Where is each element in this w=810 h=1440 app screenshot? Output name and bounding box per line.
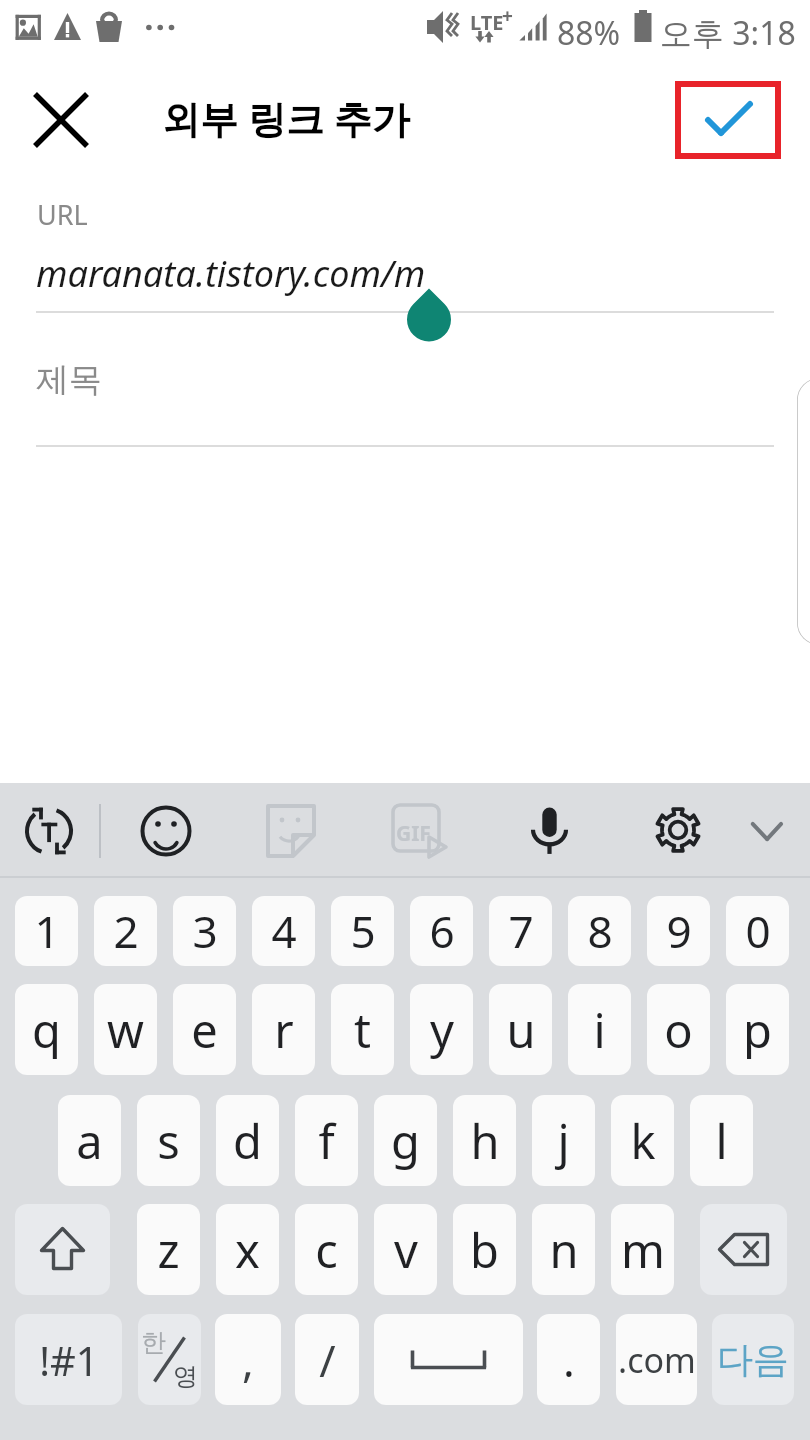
staticText: u [506,998,536,1062]
button[interactable]: l [690,1095,753,1186]
staticText: GIF [396,819,431,848]
staticText: j [557,1109,570,1173]
button[interactable]: 8 [568,896,631,966]
staticText: k [630,1109,656,1173]
staticText: LTE [470,9,504,36]
staticText: 5 [350,901,376,961]
staticText: r [274,998,294,1062]
button[interactable]: , [215,1314,281,1405]
staticText: 외부 링크 추가 [162,92,410,144]
staticText: h [470,1109,500,1173]
button[interactable]: Shift [15,1204,110,1295]
staticText: g [391,1109,420,1173]
staticText: 오후 3:18 [660,11,796,55]
button[interactable]: Confirm [678,84,778,156]
button[interactable]: m [611,1204,674,1295]
button[interactable]: Keyboard settings [644,797,712,865]
button[interactable]: d [216,1095,279,1186]
staticText: 다음 [717,1337,789,1382]
button[interactable]: Translate [15,797,83,865]
button[interactable]: URL [36,188,774,313]
button[interactable]: Space [374,1314,523,1405]
staticText: !#1 [39,1333,99,1387]
button[interactable]: k [611,1095,674,1186]
button[interactable]: p [726,984,789,1075]
staticText: URL [37,196,88,233]
button[interactable]: 다음 [712,1314,794,1405]
button[interactable]: j [532,1095,595,1186]
staticText: o [664,998,693,1062]
staticText: c [315,1218,338,1282]
button[interactable]: y [410,984,473,1075]
staticText: i [593,998,606,1062]
staticText: 한 [141,1327,166,1358]
button[interactable]: f [295,1095,358,1186]
staticText: f [318,1109,335,1173]
button[interactable]: e [173,984,236,1075]
staticText: 2 [113,901,139,961]
staticText: l [715,1109,728,1173]
button[interactable]: b [453,1204,516,1295]
button[interactable]: s [137,1095,200,1186]
button[interactable]: q [15,984,78,1075]
staticText: 88% [557,11,621,55]
button[interactable]: h [453,1095,516,1186]
button[interactable]: n [532,1204,595,1295]
staticText: 4 [271,901,297,961]
staticText: q [32,998,61,1062]
button[interactable]: GIF [385,797,453,865]
button[interactable]: c [295,1204,358,1295]
staticText: p [743,998,772,1062]
staticText: m [621,1218,665,1282]
staticText: v [394,1218,418,1282]
button[interactable]: x [216,1204,279,1295]
staticText: .com [618,1337,696,1383]
staticText: x [235,1218,260,1282]
staticText: s [157,1109,180,1173]
button[interactable]: r [252,984,315,1075]
button[interactable]: 제목 [36,325,774,447]
button[interactable]: v [374,1204,437,1295]
button[interactable]: u [489,984,552,1075]
staticText: . [563,1330,575,1390]
staticText: 9 [666,901,692,961]
button[interactable]: w [94,984,157,1075]
button[interactable]: Stickers [257,797,325,865]
button[interactable]: o [647,984,710,1075]
button[interactable]: .com [616,1314,697,1405]
button[interactable]: Voice input [515,797,583,865]
staticText: t [354,998,371,1062]
button[interactable]: 2 [94,896,157,966]
button[interactable]: 1 [15,896,78,966]
button[interactable]: 7 [489,896,552,966]
button[interactable]: 5 [331,896,394,966]
button[interactable]: / [295,1314,359,1405]
button[interactable]: Backspace [700,1204,787,1295]
button[interactable]: 6 [410,896,473,966]
button[interactable]: 9 [647,896,710,966]
button[interactable]: Switch language [138,1314,201,1405]
button[interactable]: i [568,984,631,1075]
button[interactable]: a [58,1095,121,1186]
button[interactable]: Emoji [132,797,200,865]
staticText: maranata.tistory.com/m [36,249,426,298]
button[interactable]: z [137,1204,200,1295]
button[interactable]: Close [20,79,102,161]
staticText: / [319,1330,336,1390]
staticText: e [191,998,218,1062]
staticText: 제목 [36,359,102,401]
button[interactable]: g [374,1095,437,1186]
staticText: b [470,1218,499,1282]
button[interactable]: 4 [252,896,315,966]
staticText: 7 [508,901,534,961]
staticText: a [76,1109,103,1173]
button[interactable]: Hide keyboard [733,797,801,865]
button[interactable]: !#1 [15,1314,122,1405]
staticText: 0 [745,901,771,961]
staticText: y [430,998,454,1062]
staticText: 1 [34,901,60,961]
button[interactable]: 0 [726,896,789,966]
button[interactable]: . [537,1314,600,1405]
button[interactable]: 3 [173,896,236,966]
button[interactable]: t [331,984,394,1075]
